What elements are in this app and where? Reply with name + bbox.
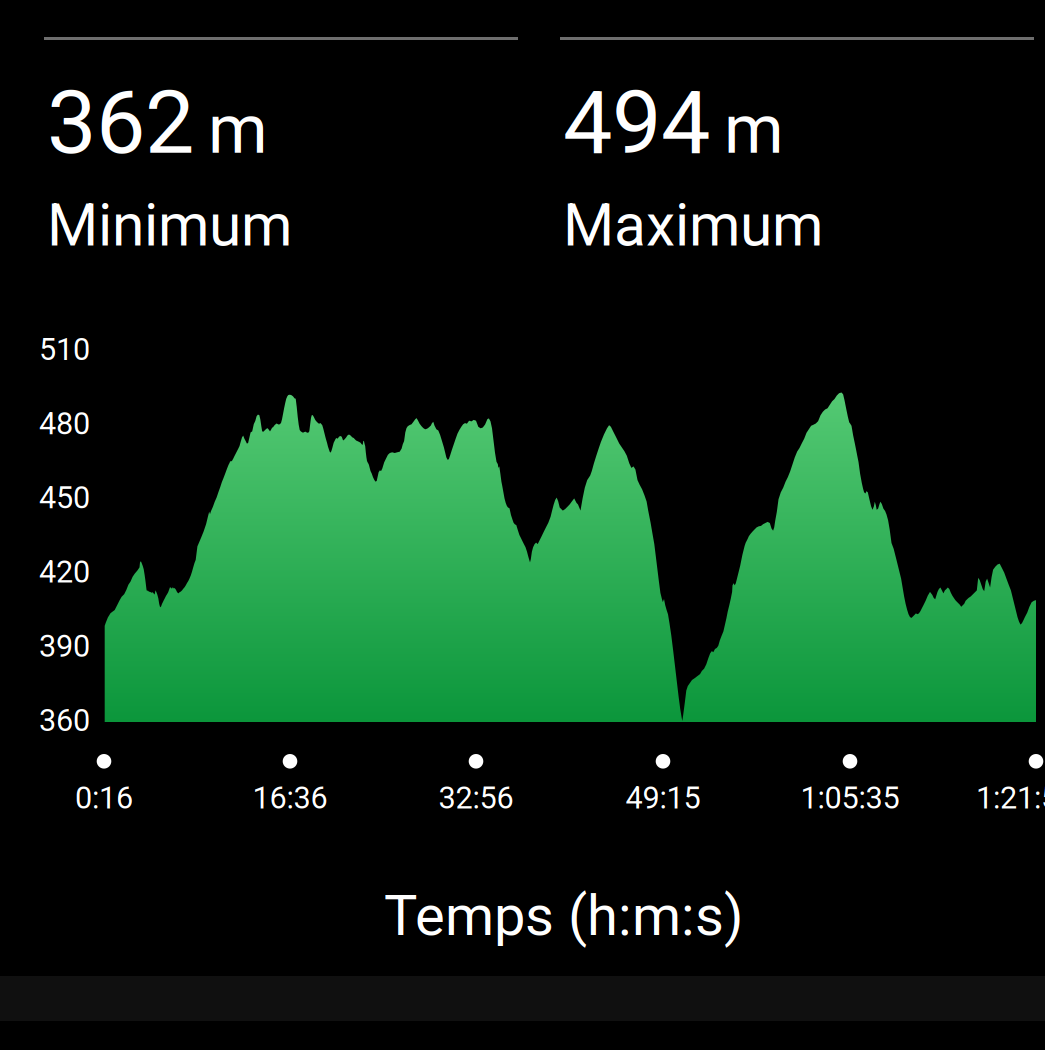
staticText: Temps (h:m:s)	[384, 883, 743, 949]
staticText: Minimum	[47, 191, 292, 260]
staticText: 49:15	[625, 780, 700, 816]
staticText: 1:21:55	[976, 780, 1045, 816]
staticText: m	[724, 90, 784, 169]
staticText: 494	[563, 71, 710, 174]
staticText: 390	[39, 628, 90, 664]
button[interactable]: 494	[563, 37, 1037, 260]
staticText: 420	[39, 554, 90, 590]
staticText: 32:56	[438, 780, 513, 816]
staticText: 1:05:35	[800, 780, 899, 816]
staticText: 362	[47, 71, 194, 174]
staticText: 16:36	[252, 780, 327, 816]
staticText: 360	[39, 702, 90, 738]
staticText: 480	[39, 406, 90, 442]
staticText: m	[208, 90, 268, 169]
staticText: 510	[39, 331, 90, 367]
staticText: Maximum	[563, 191, 823, 260]
staticText: 0:16	[75, 780, 133, 816]
button[interactable]: Elevation chart	[0, 0, 1045, 1050]
button[interactable]: 362	[47, 37, 521, 260]
staticText: 450	[39, 480, 90, 516]
